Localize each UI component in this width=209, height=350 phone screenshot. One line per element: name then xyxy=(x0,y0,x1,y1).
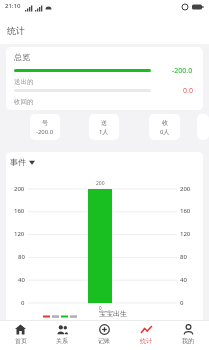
staticText: 首页 xyxy=(15,337,27,345)
staticText: 0.0 xyxy=(183,86,193,96)
staticText: 事件 xyxy=(10,157,26,167)
staticText: 我的 xyxy=(182,337,194,345)
staticText: 0 xyxy=(99,305,102,311)
button[interactable]: 号 xyxy=(30,114,60,140)
button[interactable]: 记账 xyxy=(83,320,125,350)
button[interactable]: 总览 xyxy=(6,47,203,110)
button[interactable]: 送 xyxy=(89,114,119,140)
staticText: 统计 xyxy=(140,337,152,345)
staticText: 120 xyxy=(14,230,25,238)
staticText: 收 xyxy=(162,119,168,127)
staticText: 40 xyxy=(180,276,187,284)
staticText: 总览 xyxy=(14,52,30,62)
staticText: -200.0 xyxy=(36,128,54,136)
staticText: 0 xyxy=(180,299,184,307)
staticText: 80 xyxy=(18,253,25,261)
staticText: 关系 xyxy=(56,337,68,345)
staticText: 120 xyxy=(180,230,191,238)
button[interactable]: 我的 xyxy=(167,320,209,350)
staticText: 送 xyxy=(101,119,107,127)
staticText: -200.0 xyxy=(172,66,193,76)
staticText: 40 xyxy=(18,276,25,284)
button[interactable]: 收 xyxy=(149,114,180,140)
staticText: 200 xyxy=(14,185,25,193)
button[interactable]: 事件 xyxy=(10,157,35,167)
staticText: 统计 xyxy=(7,25,25,36)
staticText: 记账 xyxy=(98,337,110,345)
staticText: 160 xyxy=(180,207,191,215)
staticText: 160 xyxy=(14,207,25,215)
button[interactable]: 统计 xyxy=(125,320,167,350)
staticText: 0 xyxy=(21,299,25,307)
button[interactable]: 首页 xyxy=(0,320,41,350)
button[interactable]: 关系 xyxy=(41,320,83,350)
staticText: 宝宝出生 xyxy=(99,309,127,318)
staticText: 80 xyxy=(180,253,187,261)
staticText: 送出的 xyxy=(14,78,34,86)
staticText: 200 xyxy=(96,180,105,187)
staticText: 1人 xyxy=(99,128,109,136)
staticText: 号 xyxy=(42,119,48,127)
staticText: 0人 xyxy=(160,128,170,136)
staticText: 21:10 xyxy=(5,2,21,10)
staticText: 200 xyxy=(180,185,191,193)
staticText: 收回的 xyxy=(14,98,34,106)
